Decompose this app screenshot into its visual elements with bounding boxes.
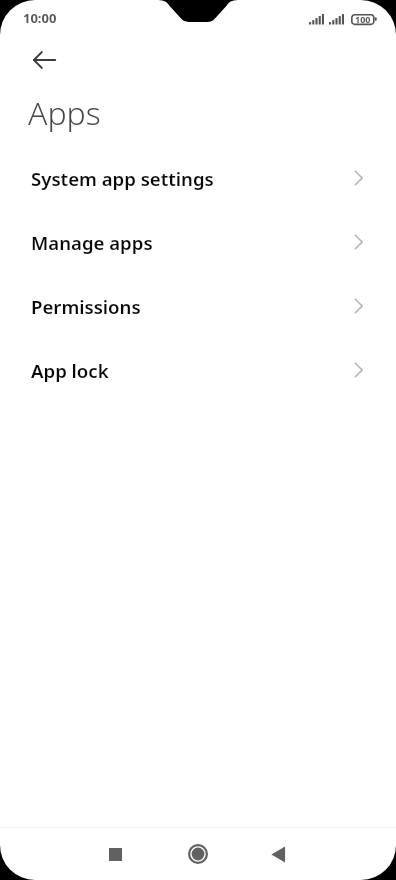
staticText: 10:00 [23, 9, 57, 27]
button[interactable]: Recents [91, 830, 139, 878]
button[interactable]: App lock [0, 338, 396, 402]
staticText: 100 [355, 13, 371, 24]
staticText: Manage apps [31, 230, 153, 255]
staticText: Apps [28, 91, 101, 135]
button[interactable]: Manage apps [0, 210, 396, 274]
button[interactable]: Back [254, 830, 302, 878]
staticText: App lock [31, 358, 109, 383]
button[interactable]: System app settings [0, 146, 396, 210]
button[interactable]: Home [174, 830, 222, 878]
button[interactable]: Permissions [0, 274, 396, 338]
button[interactable]: Back [23, 42, 65, 78]
staticText: Permissions [31, 294, 141, 319]
staticText: System app settings [31, 166, 214, 191]
